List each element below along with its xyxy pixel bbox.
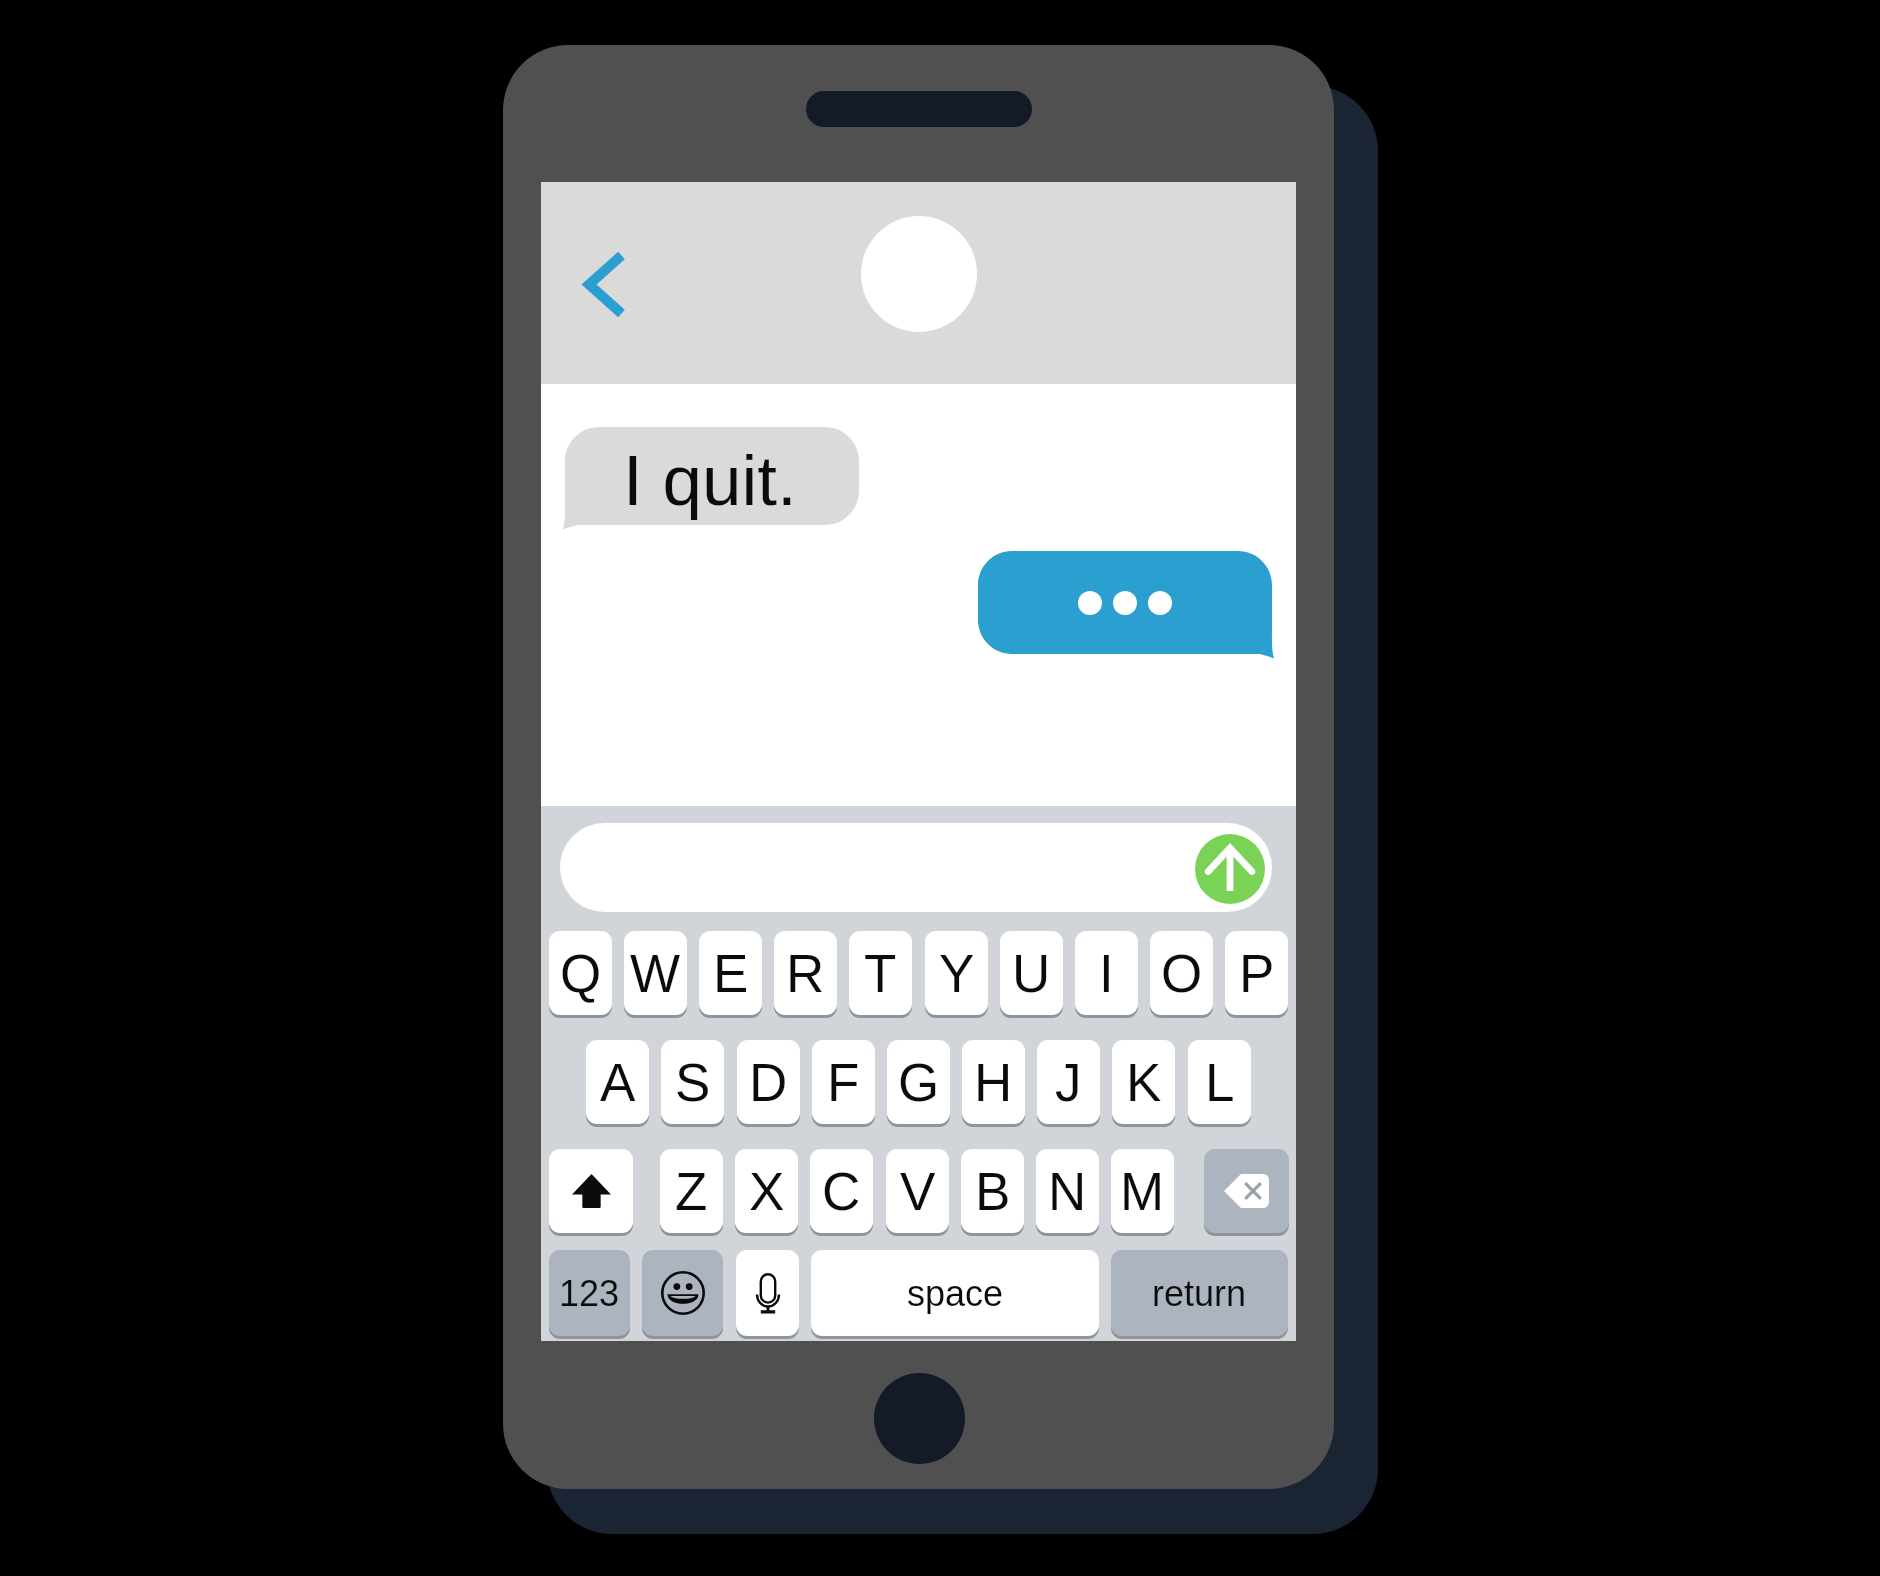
- staticText: C: [822, 1162, 861, 1221]
- staticText: B: [975, 1162, 1011, 1221]
- staticText: U: [1012, 944, 1051, 1003]
- button[interactable]: O: [1150, 931, 1213, 1015]
- button[interactable]: X: [735, 1149, 798, 1233]
- staticText: I: [1099, 944, 1114, 1003]
- button[interactable]: Contact photo: [861, 216, 977, 332]
- button[interactable]: Back: [571, 240, 635, 330]
- staticText: W: [630, 944, 681, 1003]
- button[interactable]: [962, 545, 1288, 666]
- button[interactable]: 123: [549, 1250, 630, 1336]
- button[interactable]: Shift: [549, 1149, 633, 1233]
- button[interactable]: E: [699, 931, 762, 1015]
- button[interactable]: W: [624, 931, 687, 1015]
- button[interactable]: Send message: [1195, 834, 1265, 904]
- staticText: P: [1239, 944, 1275, 1003]
- button[interactable]: space: [811, 1250, 1099, 1336]
- staticText: return: [1152, 1273, 1247, 1313]
- staticText: Z: [675, 1162, 708, 1221]
- staticText: T: [864, 944, 897, 1003]
- button[interactable]: V: [886, 1149, 949, 1233]
- button[interactable]: S: [661, 1040, 724, 1124]
- staticText: H: [974, 1053, 1013, 1112]
- button[interactable]: Q: [549, 931, 612, 1015]
- staticText: G: [898, 1053, 940, 1112]
- staticText: D: [749, 1053, 788, 1112]
- button[interactable]: Dictation: [736, 1250, 799, 1336]
- staticText: I quit.: [623, 441, 797, 520]
- button[interactable]: L: [1188, 1040, 1251, 1124]
- staticText: L: [1205, 1053, 1235, 1112]
- button[interactable]: I quit.: [549, 421, 875, 537]
- staticText: N: [1048, 1162, 1087, 1221]
- button[interactable]: H: [962, 1040, 1025, 1124]
- button[interactable]: T: [849, 931, 912, 1015]
- button[interactable]: C: [810, 1149, 873, 1233]
- button[interactable]: R: [774, 931, 837, 1015]
- button[interactable]: Backspace: [1204, 1149, 1289, 1233]
- staticText: J: [1055, 1053, 1082, 1112]
- button[interactable]: K: [1112, 1040, 1175, 1124]
- button[interactable]: M: [1111, 1149, 1174, 1233]
- staticText: F: [827, 1053, 860, 1112]
- staticText: 123: [559, 1273, 620, 1313]
- button[interactable]: Message input field: [560, 823, 1272, 912]
- button[interactable]: F: [812, 1040, 875, 1124]
- button[interactable]: P: [1225, 931, 1288, 1015]
- button[interactable]: D: [737, 1040, 800, 1124]
- button[interactable]: B: [961, 1149, 1024, 1233]
- button[interactable]: J: [1037, 1040, 1100, 1124]
- button[interactable]: A: [586, 1040, 649, 1124]
- staticText: V: [900, 1162, 936, 1221]
- button[interactable]: Home button: [874, 1373, 965, 1464]
- staticText: R: [786, 944, 825, 1003]
- staticText: O: [1161, 944, 1203, 1003]
- staticText: K: [1126, 1053, 1162, 1112]
- button[interactable]: I: [1075, 931, 1138, 1015]
- staticText: Q: [560, 944, 602, 1003]
- staticText: Y: [939, 944, 975, 1003]
- staticText: E: [713, 944, 749, 1003]
- button[interactable]: Emoji keyboard: [642, 1250, 723, 1336]
- staticText: A: [600, 1053, 636, 1112]
- button[interactable]: G: [887, 1040, 950, 1124]
- staticText: X: [749, 1162, 785, 1221]
- button[interactable]: Y: [925, 931, 988, 1015]
- button[interactable]: N: [1036, 1149, 1099, 1233]
- staticText: M: [1120, 1162, 1165, 1221]
- button[interactable]: U: [1000, 931, 1063, 1015]
- staticText: S: [675, 1053, 711, 1112]
- staticText: space: [907, 1273, 1004, 1313]
- button[interactable]: Z: [660, 1149, 723, 1233]
- button[interactable]: return: [1111, 1250, 1288, 1336]
